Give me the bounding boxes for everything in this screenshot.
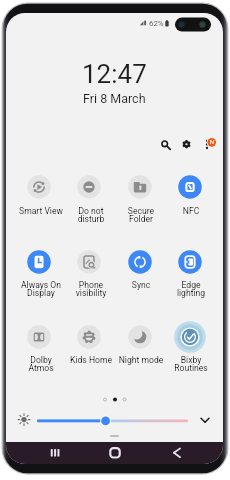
staticText: Fri 8 March [83, 91, 146, 106]
button[interactable]: Kids Home [64, 321, 114, 353]
staticText: NFC [164, 206, 218, 226]
staticText: Bixby Routines [164, 355, 218, 375]
staticText: 12:47 [82, 59, 147, 89]
button[interactable]: Home [95, 442, 135, 464]
button[interactable]: Settings [177, 136, 196, 155]
button[interactable]: Search [156, 136, 175, 155]
staticText: Sync [114, 280, 168, 300]
button[interactable]: Phone visibility [64, 246, 114, 278]
staticText: Edge lighting [164, 280, 218, 300]
staticText: Do not disturb [64, 206, 118, 226]
button[interactable]: Smart View [14, 171, 64, 203]
button[interactable]: More options [198, 133, 220, 155]
staticText: Night mode [114, 355, 168, 375]
button[interactable]: Secure Folder [115, 171, 165, 203]
staticText: Secure Folder [114, 206, 168, 226]
button[interactable]: Always On Display [14, 246, 64, 278]
staticText: Always On Display [14, 280, 68, 300]
button[interactable]: Recents [35, 442, 75, 464]
staticText: Phone visibility [64, 280, 118, 300]
button[interactable]: Night mode [115, 321, 165, 353]
button[interactable]: Do not disturb [64, 171, 114, 203]
button[interactable]: Brightness [16, 411, 34, 429]
staticText: Dolby Atmos [14, 355, 68, 375]
staticText: N [210, 139, 214, 146]
button[interactable]: Back [157, 442, 197, 464]
button[interactable]: Sync [115, 246, 165, 278]
button[interactable]: NFC [165, 171, 215, 203]
staticText: 62% [149, 19, 164, 28]
button[interactable]: Dolby Atmos [14, 321, 64, 353]
staticText: Kids Home [64, 355, 118, 375]
button[interactable]: Expand [197, 411, 213, 429]
button[interactable]: Edge lighting [165, 246, 215, 278]
button[interactable]: Bixby Routines [165, 321, 215, 353]
staticText: Smart View [14, 206, 68, 226]
